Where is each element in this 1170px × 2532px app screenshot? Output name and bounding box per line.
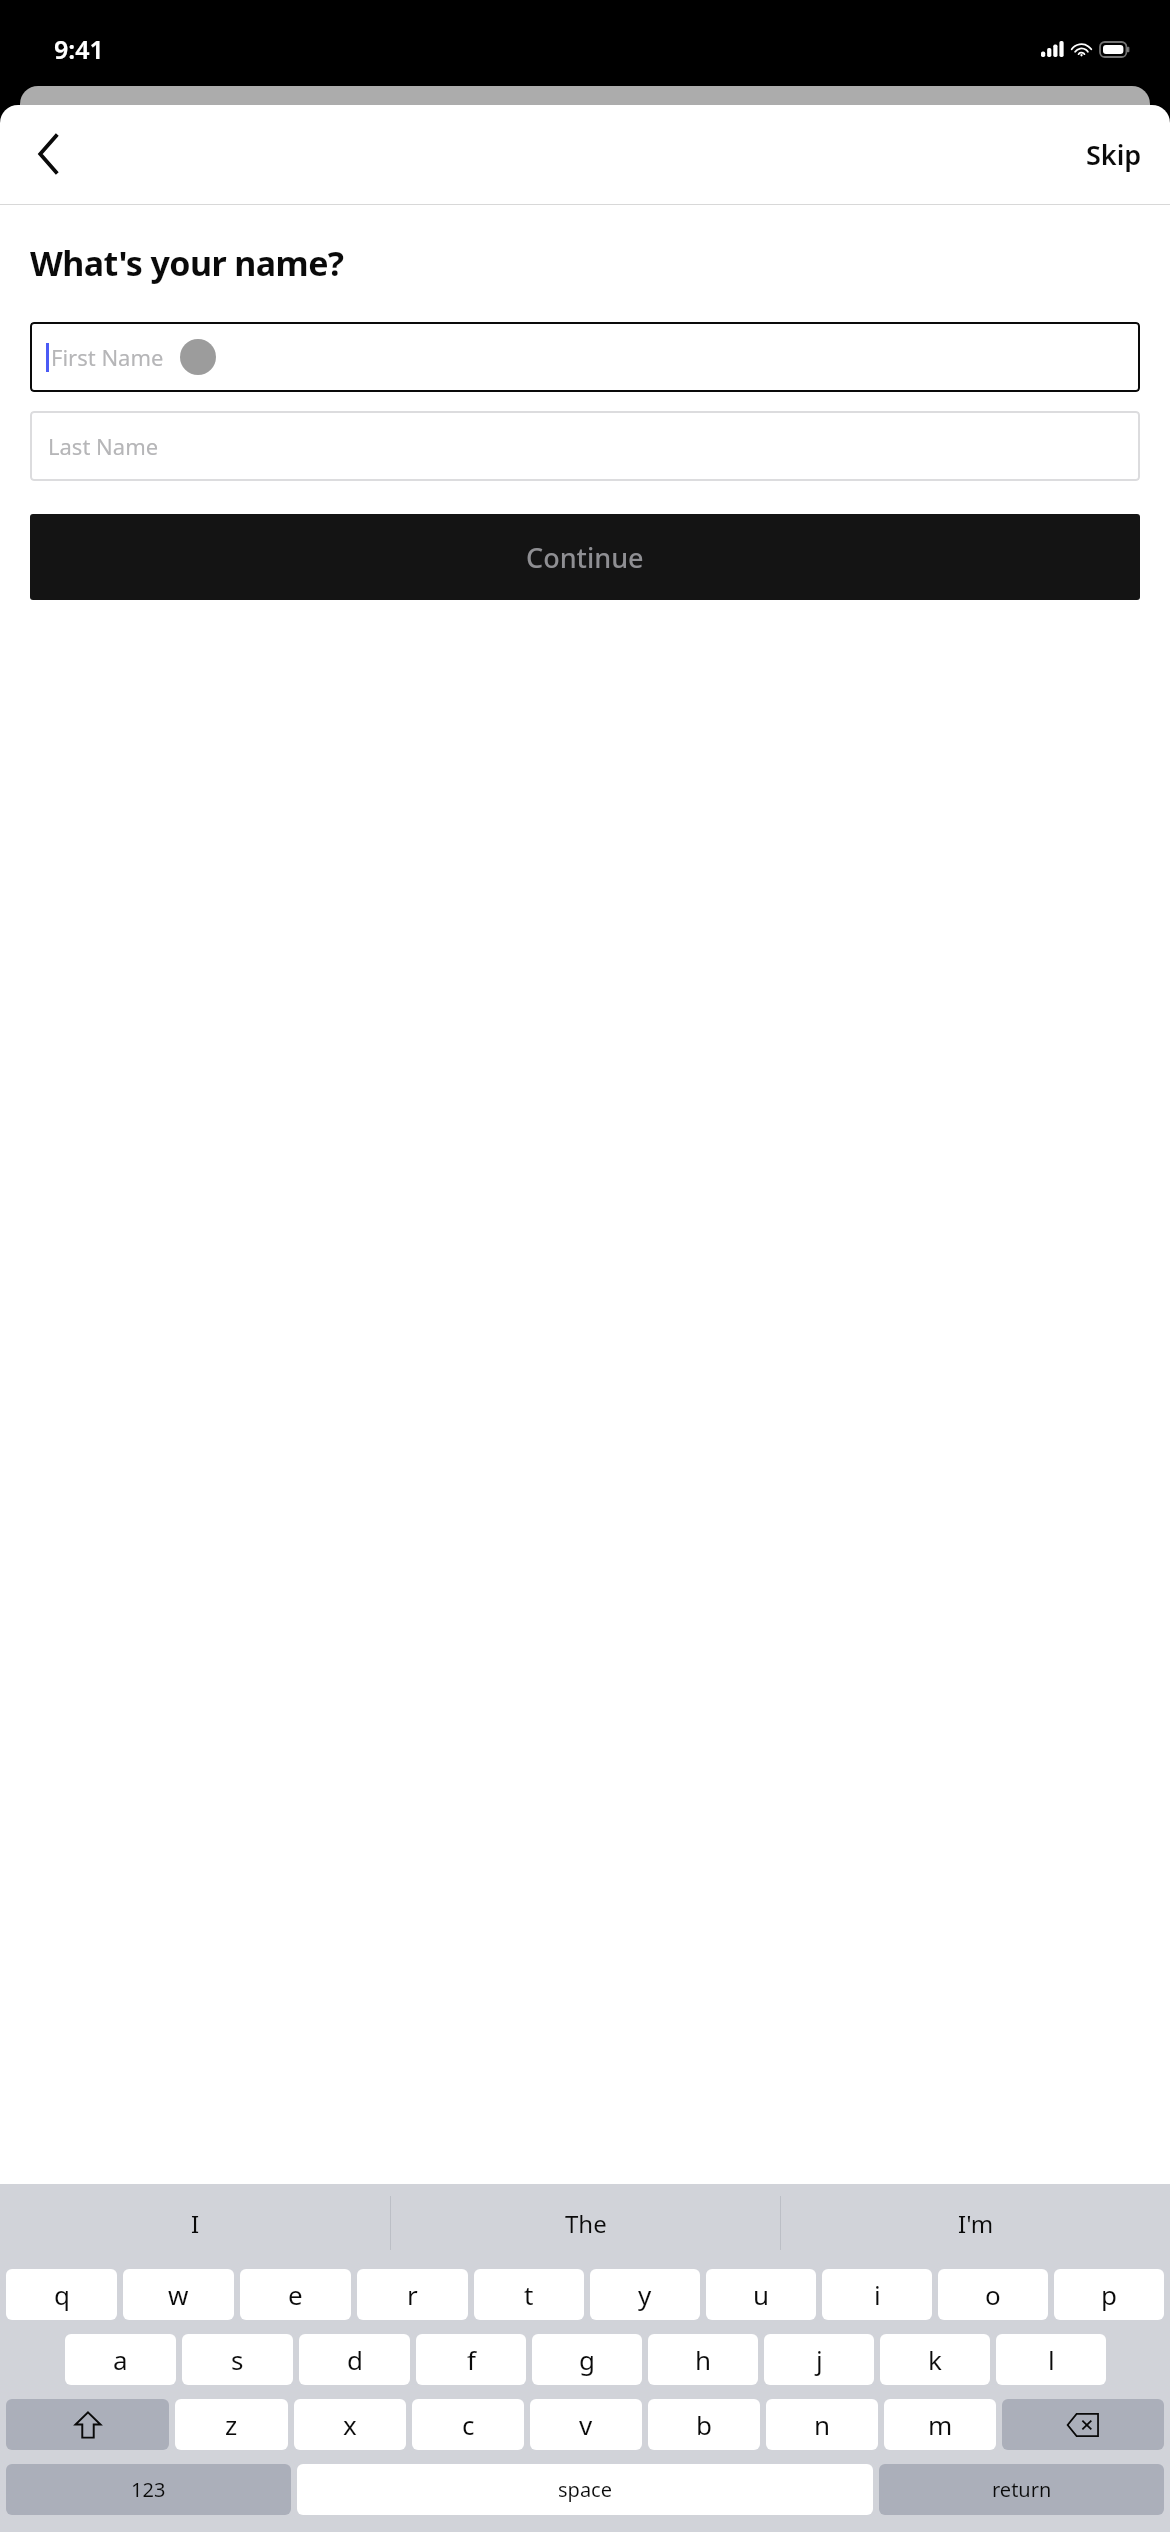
button[interactable]: u <box>706 2269 816 2320</box>
staticText: m <box>928 2407 953 2442</box>
staticText: t <box>524 2277 534 2312</box>
button[interactable]: j <box>764 2334 874 2385</box>
staticText: Continue <box>526 539 644 576</box>
button[interactable]: l <box>996 2334 1106 2385</box>
button[interactable]: w <box>123 2269 234 2320</box>
staticText: n <box>814 2407 831 2442</box>
button[interactable]: c <box>412 2399 524 2450</box>
staticText: 9:41 <box>54 32 104 66</box>
button[interactable]: The <box>391 2184 780 2262</box>
button[interactable]: z <box>175 2399 288 2450</box>
staticText: The <box>565 2207 607 2240</box>
button[interactable]: g <box>532 2334 642 2385</box>
button[interactable]: Backspace <box>1002 2399 1164 2450</box>
button[interactable]: o <box>938 2269 1048 2320</box>
staticText: Last Name <box>48 431 159 461</box>
button[interactable]: q <box>6 2269 117 2320</box>
staticText: d <box>347 2342 363 2377</box>
staticText: Skip <box>1086 136 1142 173</box>
staticText: w <box>168 2277 189 2312</box>
staticText: y <box>638 2277 652 2312</box>
staticText: r <box>407 2277 418 2312</box>
staticText: b <box>696 2407 712 2442</box>
button[interactable]: x <box>294 2399 406 2450</box>
staticText: v <box>579 2407 593 2442</box>
staticText: l <box>1048 2342 1055 2377</box>
button[interactable]: r <box>357 2269 468 2320</box>
staticText: z <box>225 2407 238 2442</box>
button[interactable]: t <box>474 2269 584 2320</box>
staticText: x <box>343 2407 357 2442</box>
staticText: i <box>874 2277 881 2312</box>
button[interactable]: n <box>766 2399 878 2450</box>
staticText: k <box>928 2342 942 2377</box>
button[interactable]: f <box>416 2334 526 2385</box>
button[interactable]: s <box>182 2334 293 2385</box>
button[interactable]: Continue <box>30 514 1140 600</box>
button[interactable]: 123 <box>6 2464 291 2515</box>
staticText: First Name <box>51 342 164 372</box>
button[interactable]: Shift <box>6 2399 169 2450</box>
button[interactable]: return <box>879 2464 1164 2515</box>
button[interactable]: y <box>590 2269 700 2320</box>
button[interactable]: v <box>530 2399 642 2450</box>
staticText: What's your name? <box>30 240 344 286</box>
button[interactable]: e <box>240 2269 351 2320</box>
staticText: 123 <box>131 2476 166 2503</box>
button[interactable]: First Name <box>30 322 1140 392</box>
button[interactable]: Skip <box>1058 122 1170 187</box>
staticText: p <box>1101 2277 1117 2312</box>
staticText: return <box>992 2476 1052 2503</box>
button[interactable]: p <box>1054 2269 1164 2320</box>
staticText: u <box>753 2277 770 2312</box>
button[interactable]: I'm <box>781 2184 1170 2262</box>
button[interactable]: a <box>65 2334 176 2385</box>
staticText: c <box>462 2407 475 2442</box>
staticText: a <box>113 2342 128 2377</box>
button[interactable]: d <box>299 2334 410 2385</box>
staticText: j <box>816 2342 823 2377</box>
staticText: f <box>467 2342 476 2377</box>
button[interactable]: h <box>648 2334 758 2385</box>
button[interactable]: b <box>648 2399 760 2450</box>
staticText: h <box>695 2342 712 2377</box>
staticText: g <box>579 2342 595 2377</box>
button[interactable]: Last Name <box>30 411 1140 481</box>
staticText: q <box>54 2277 70 2312</box>
staticText: s <box>231 2342 244 2377</box>
staticText: I <box>191 2207 200 2240</box>
button[interactable]: k <box>880 2334 990 2385</box>
button[interactable]: m <box>884 2399 996 2450</box>
staticText: e <box>288 2277 303 2312</box>
button[interactable]: space <box>297 2464 873 2515</box>
button[interactable]: Back <box>18 123 80 185</box>
button[interactable]: I <box>0 2184 390 2262</box>
staticText: o <box>985 2277 1001 2312</box>
staticText: space <box>558 2476 612 2503</box>
staticText: I'm <box>958 2207 994 2240</box>
button[interactable]: i <box>822 2269 932 2320</box>
